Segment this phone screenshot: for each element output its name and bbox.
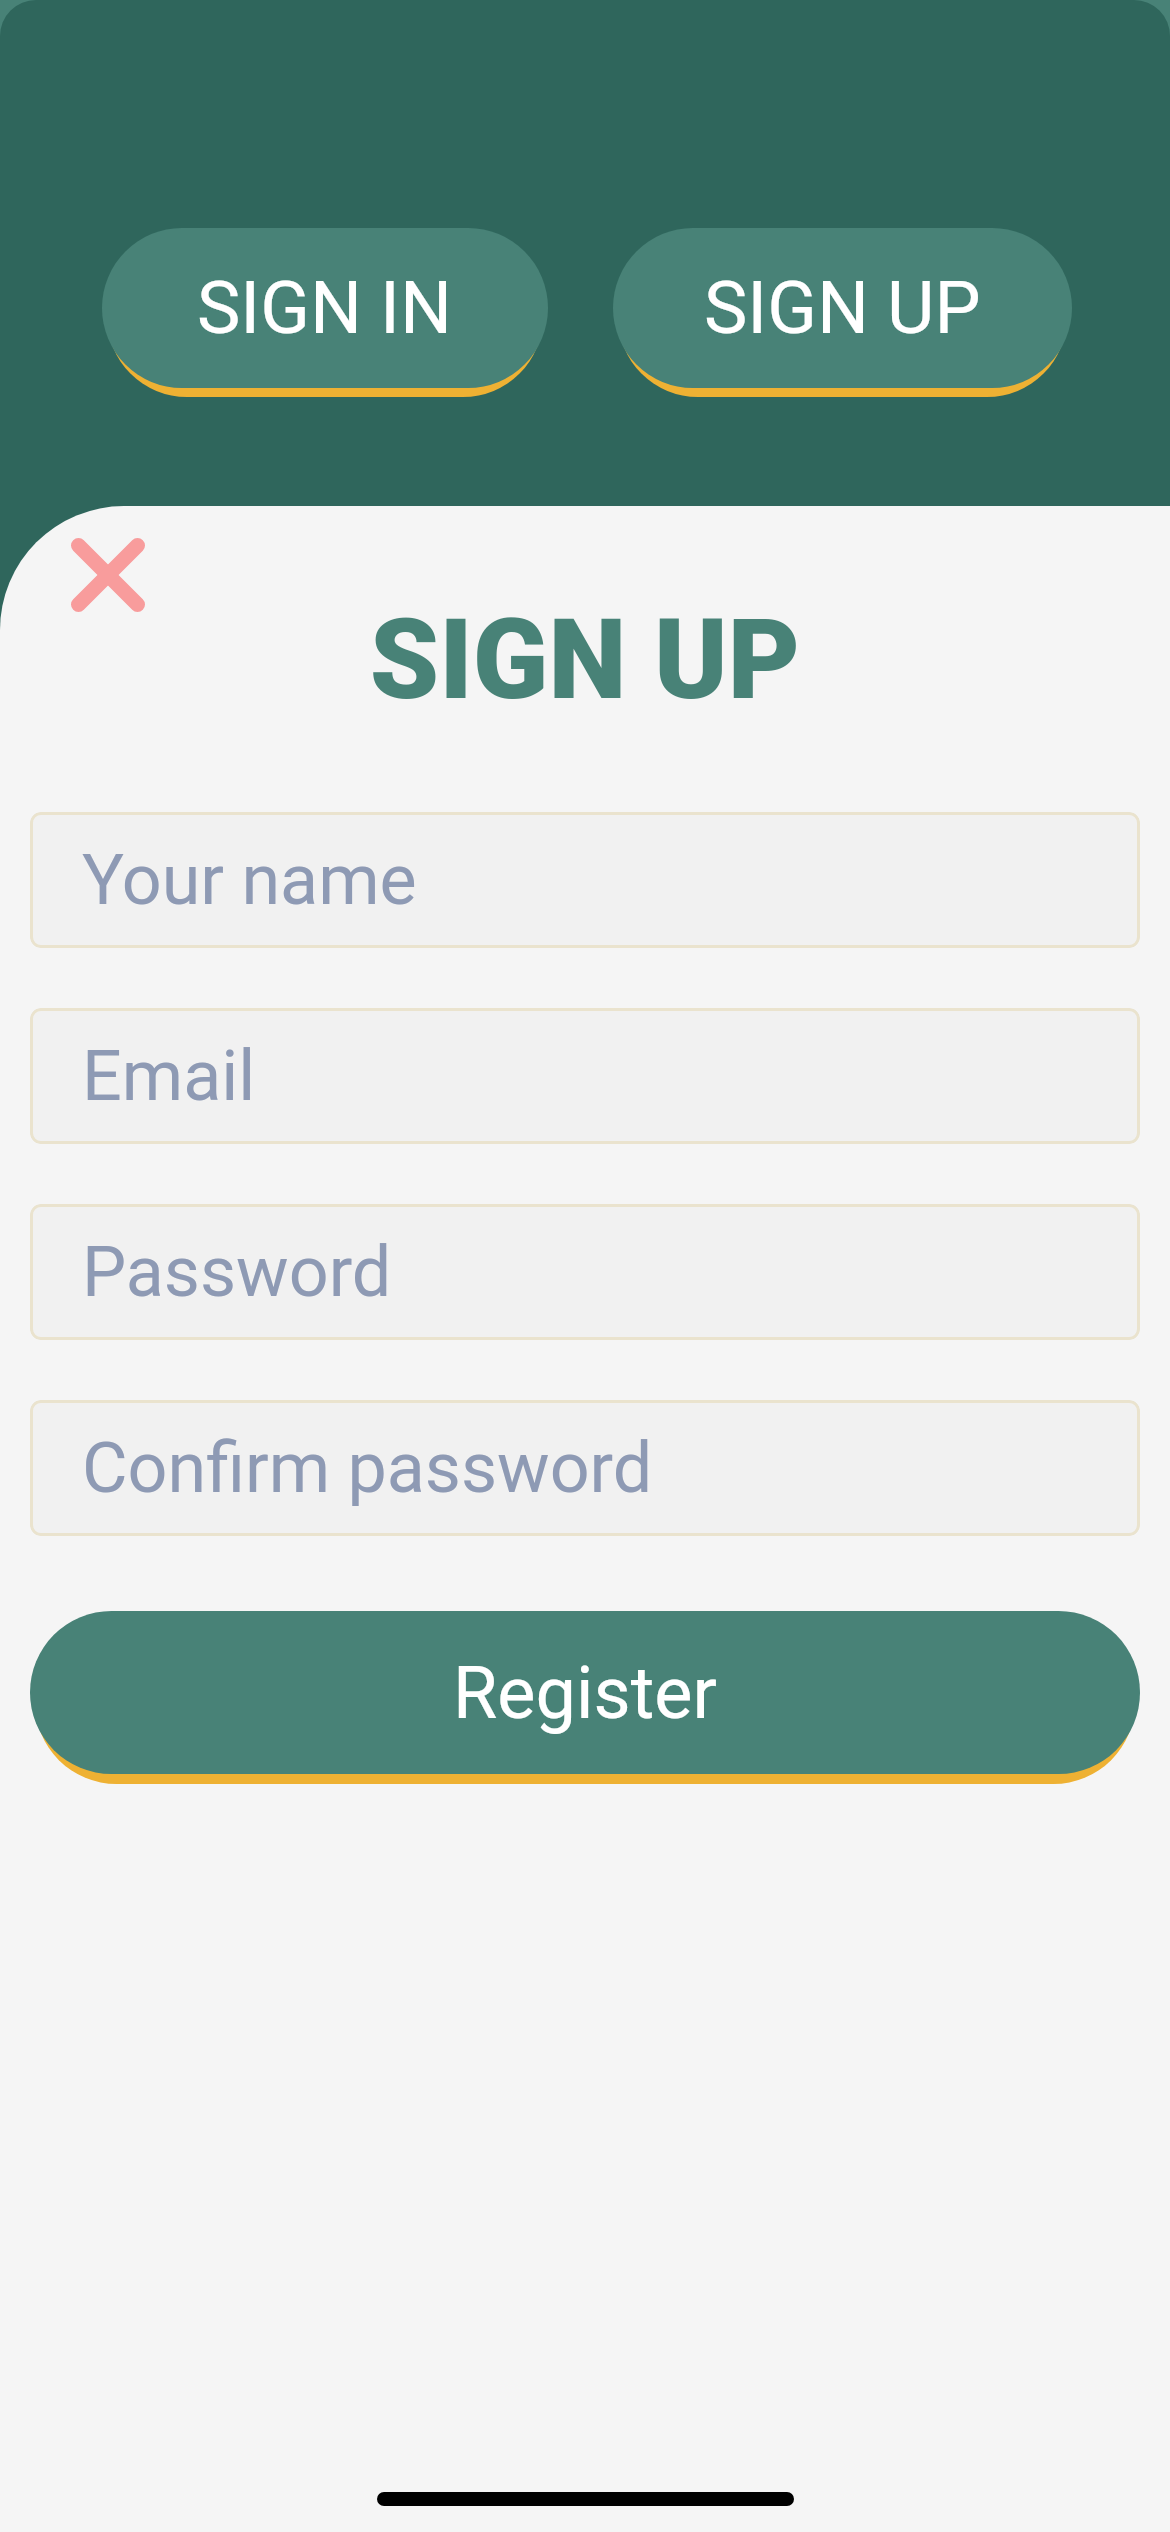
staticText: Confirm password [82, 1427, 653, 1509]
staticText: Email [82, 1035, 256, 1117]
button[interactable]: SIGN UP [613, 228, 1072, 388]
staticText: Password [82, 1231, 392, 1313]
button[interactable]: Confirm password [30, 1400, 1140, 1536]
button[interactable]: Email [30, 1008, 1140, 1144]
staticText: SIGN UP [0, 595, 1170, 725]
staticText: SIGN IN [197, 265, 453, 351]
staticText: SIGN UP [704, 265, 981, 351]
button[interactable]: Register [30, 1611, 1140, 1774]
staticText: Register [453, 1651, 717, 1735]
button[interactable]: Password [30, 1204, 1140, 1340]
button[interactable]: Close [53, 520, 163, 630]
button[interactable]: SIGN IN [102, 228, 548, 388]
button[interactable]: Your name [30, 812, 1140, 948]
staticText: Your name [82, 839, 417, 921]
